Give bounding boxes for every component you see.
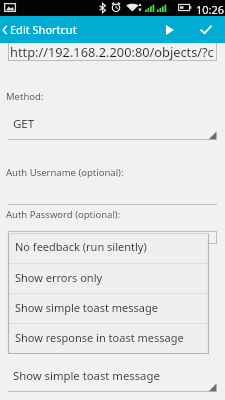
button[interactable]: Show errors only xyxy=(8,264,209,294)
button[interactable]: Show simple toast message xyxy=(8,294,209,324)
staticText: GET xyxy=(13,116,35,132)
button[interactable]: No feedback (run silently) xyxy=(8,233,209,264)
button[interactable]: GET xyxy=(8,111,217,140)
button[interactable]: Show response in toast message xyxy=(8,324,209,354)
staticText: Method: xyxy=(6,90,44,103)
button[interactable]: Run shortcut xyxy=(152,16,188,43)
staticText: Show simple toast message xyxy=(13,368,160,383)
staticText: Edit Shortcut xyxy=(10,22,77,37)
button[interactable]: Show simple toast message xyxy=(8,363,217,392)
staticText: Show response in toast message xyxy=(15,330,184,345)
staticText: Show errors only xyxy=(15,270,103,285)
staticText: Auth Password (optional): xyxy=(6,208,121,221)
staticText: Auth Username (optional): xyxy=(6,166,124,179)
button[interactable]: Save shortcut xyxy=(188,16,224,43)
staticText: http://192.168.2.200:80/objects/?c xyxy=(10,43,214,60)
button[interactable] xyxy=(8,231,217,244)
button[interactable]: http://192.168.2.200:80/objects/?c xyxy=(8,38,217,61)
button[interactable] xyxy=(8,183,217,205)
staticText: 10:26 xyxy=(196,2,225,17)
staticText: No feedback (run silently) xyxy=(15,239,147,254)
staticText: Show simple toast message xyxy=(15,300,158,315)
button[interactable]: Edit Shortcut xyxy=(0,16,79,43)
